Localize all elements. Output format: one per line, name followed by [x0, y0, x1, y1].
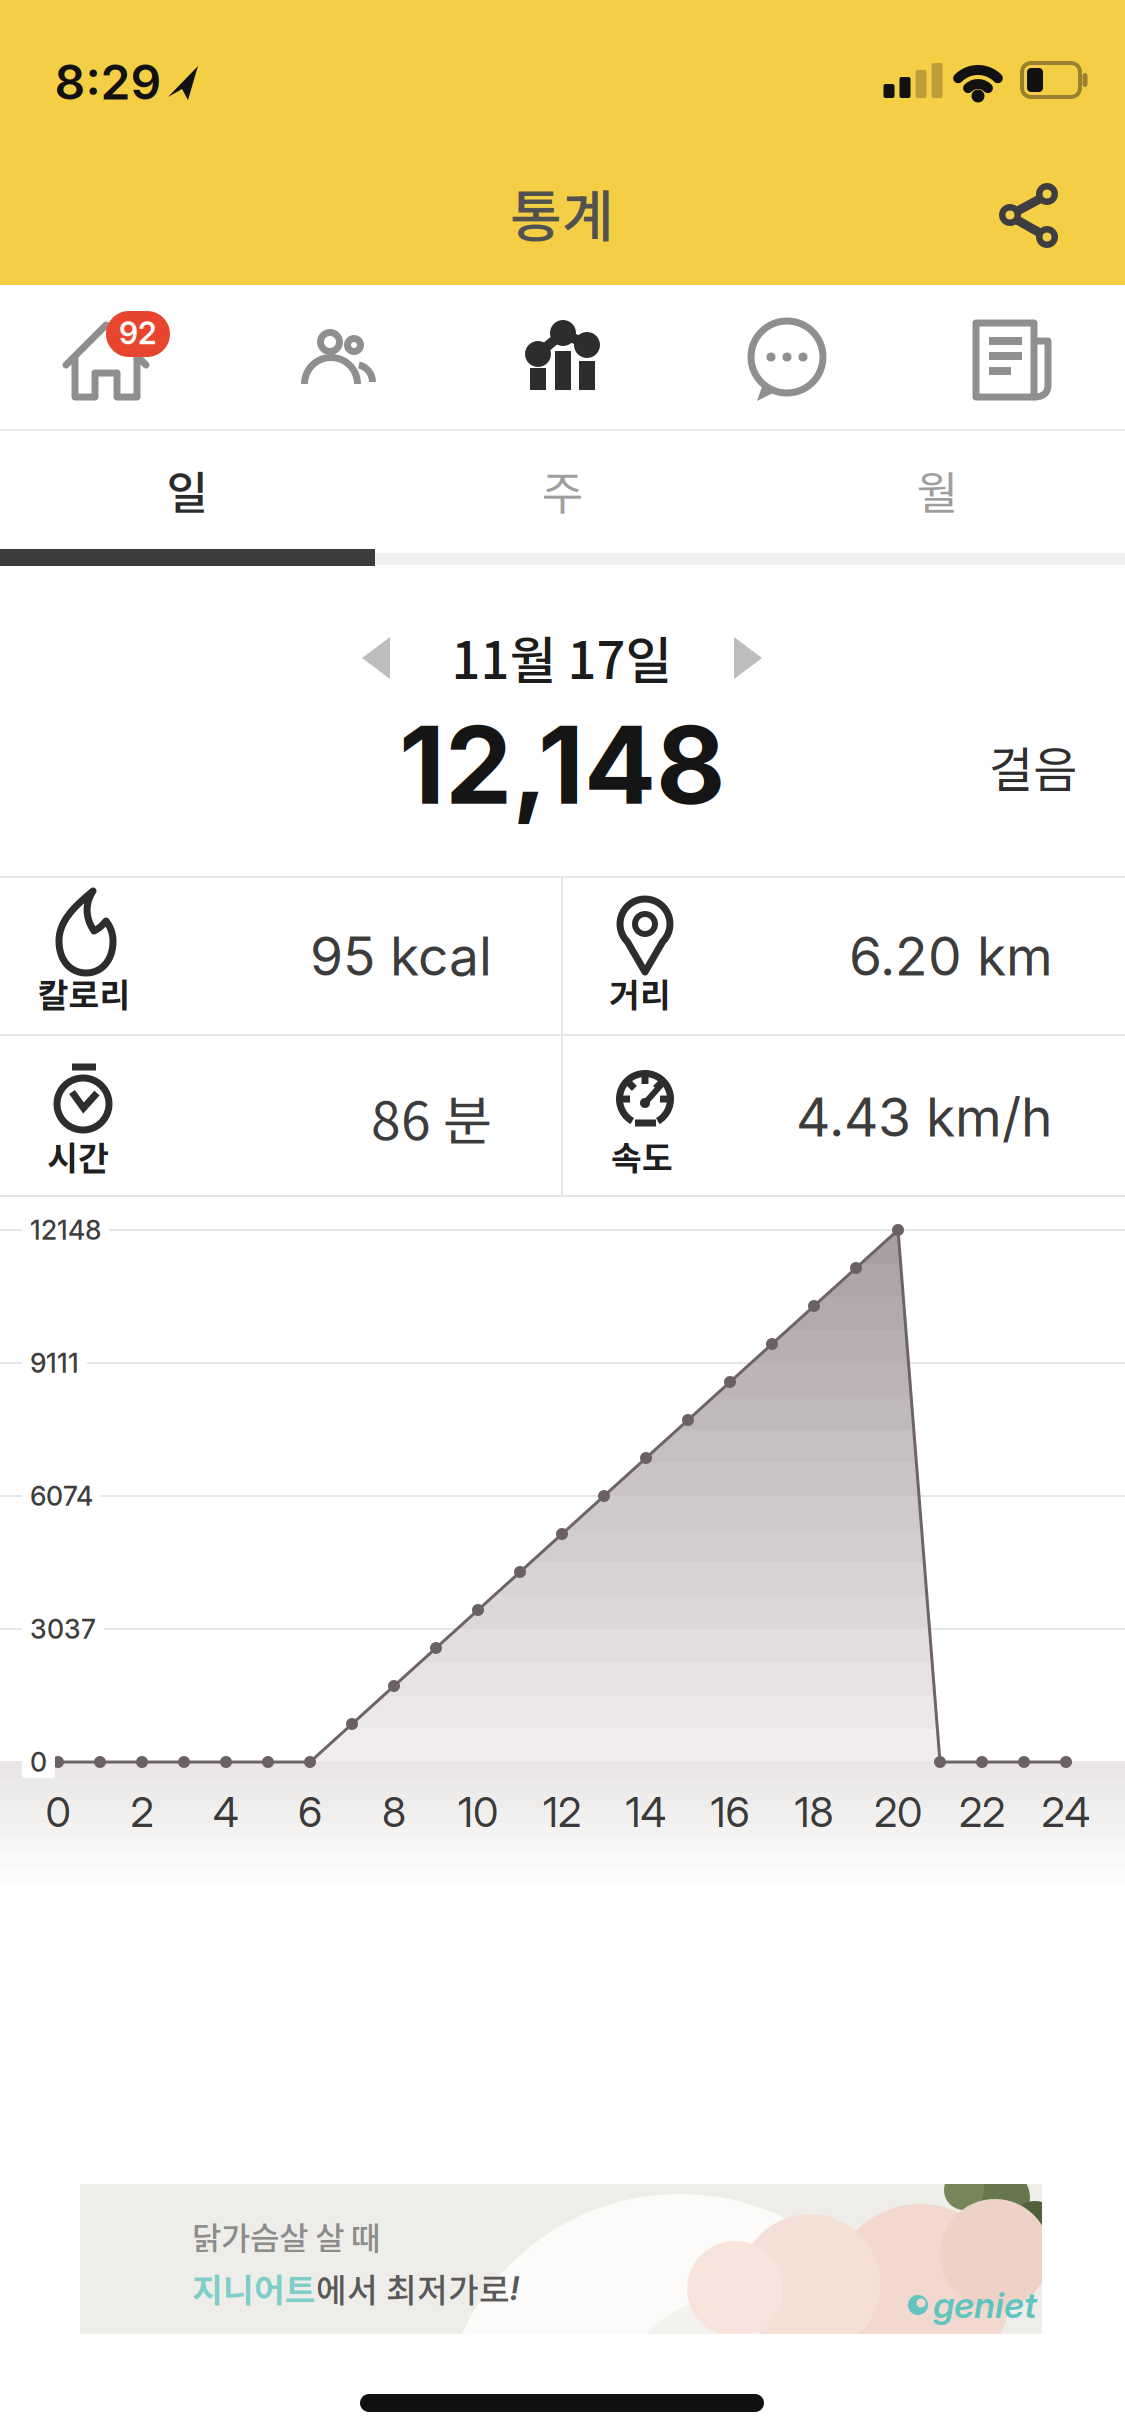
staticText: 0 [45, 1788, 70, 1836]
staticText: 95 kcal [310, 924, 492, 987]
staticText: 닭가슴살 살 때 [192, 2213, 380, 2259]
staticText: 일 [166, 457, 208, 523]
staticText: 8 [382, 1788, 406, 1836]
staticText: 걸음 [989, 731, 1077, 801]
button[interactable]: 월 [750, 435, 1125, 545]
staticText: 86 분 [371, 1078, 492, 1156]
staticText: 16 [710, 1788, 749, 1836]
button[interactable]: Share [974, 159, 1084, 269]
staticText: 11월 17일 [451, 620, 672, 694]
staticText: 통계 [510, 171, 614, 253]
staticText: 22 [959, 1788, 1005, 1836]
staticText: 에서 최저가로 [316, 2264, 510, 2312]
button[interactable]: Previous day [335, 618, 415, 698]
staticText: 2 [130, 1788, 153, 1836]
staticText: 92 [119, 315, 157, 351]
staticText: 칼로리 [37, 969, 130, 1017]
button[interactable]: Next day [709, 618, 789, 698]
staticText: 3037 [30, 1613, 96, 1645]
button[interactable]: Home [0, 285, 225, 429]
staticText: geniet [933, 2284, 1037, 2326]
staticText: 12 [543, 1788, 581, 1836]
staticText: 10 [458, 1788, 498, 1836]
staticText: 8:29 [54, 54, 161, 110]
staticText: 거리 [609, 969, 671, 1017]
button[interactable]: News [900, 285, 1125, 429]
staticText: 4 [213, 1788, 239, 1836]
staticText: 6 [298, 1788, 322, 1836]
staticText: 14 [625, 1788, 666, 1836]
button[interactable]: Statistics [450, 285, 675, 429]
staticText: 20 [874, 1788, 922, 1836]
staticText: 월 [916, 457, 958, 523]
button[interactable]: 일 [0, 435, 375, 545]
staticText: 0 [30, 1746, 47, 1778]
button[interactable]: geniet [80, 2184, 1042, 2334]
staticText: 24 [1041, 1788, 1090, 1836]
staticText: 주 [541, 457, 583, 523]
staticText: 지니어트 [192, 2264, 316, 2312]
staticText: 6.20 km [849, 924, 1053, 987]
staticText: 18 [794, 1788, 833, 1836]
staticText: 6074 [30, 1480, 93, 1512]
button[interactable]: Friends [225, 285, 450, 429]
staticText: 속도 [611, 1132, 673, 1180]
staticText: 9111 [30, 1347, 79, 1379]
button[interactable]: 주 [375, 435, 750, 545]
staticText: 4.43 km/h [796, 1085, 1053, 1148]
staticText: 12,148 [399, 702, 725, 828]
staticText: 시간 [47, 1132, 109, 1180]
staticText: ! [510, 2268, 519, 2308]
button[interactable]: Chat [675, 285, 900, 429]
staticText: 12148 [30, 1214, 101, 1246]
